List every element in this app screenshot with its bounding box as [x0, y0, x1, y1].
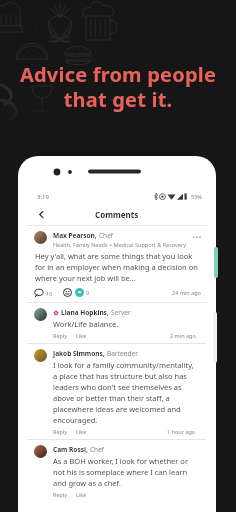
- staticText: Health, Family Needs > Medical Support &…: [53, 241, 187, 248]
- button[interactable]: Cam Rossi,: [27, 440, 206, 502]
- staticText: Server: [111, 308, 131, 317]
- staticText: 55%: [191, 193, 202, 200]
- button[interactable]: Jakob Simmons,: [27, 344, 206, 439]
- staticText: As a BOH worker, I look for whether or n…: [53, 456, 196, 488]
- staticText: Comments: [95, 209, 139, 220]
- staticText: Work/Life balance.: [53, 319, 119, 329]
- staticText: Chef: [99, 231, 114, 240]
- staticText: Bartender: [107, 349, 138, 358]
- staticText: 2 min ago: [170, 332, 196, 339]
- staticText: Max Pearson,: [53, 231, 97, 240]
- staticText: 3:19: [37, 193, 49, 201]
- staticText: Jakob Simmons,: [53, 349, 105, 358]
- staticText: 24 min ago: [172, 289, 201, 296]
- button[interactable]: 9: [75, 288, 90, 297]
- button[interactable]: Reply: [53, 491, 68, 498]
- button[interactable]: 10: [33, 288, 54, 298]
- staticText: Advice from people that get it.: [0, 61, 236, 113]
- button[interactable]: Max Pearson,: [27, 226, 206, 302]
- staticText: Chef: [90, 445, 105, 454]
- staticText: Cam Rossi,: [53, 445, 88, 454]
- staticText: 9: [86, 289, 90, 296]
- button[interactable]: Like: [76, 428, 87, 435]
- button[interactable]: More options: [190, 231, 204, 243]
- button[interactable]: Reply: [53, 428, 68, 435]
- button[interactable]: Like: [76, 491, 87, 498]
- button[interactable]: Liana Hopkins,: [27, 303, 206, 343]
- staticText: 1 hour ago: [167, 428, 196, 435]
- staticText: I look for a family community/mentality,…: [53, 360, 196, 425]
- button[interactable]: Back: [31, 203, 51, 225]
- button[interactable]: Add reaction: [63, 288, 72, 297]
- staticText: Hey y'all, what are some things that you…: [35, 251, 198, 283]
- staticText: 10: [46, 290, 53, 297]
- button[interactable]: Like: [76, 332, 87, 339]
- staticText: Liana Hopkins,: [61, 308, 109, 317]
- button[interactable]: Reply: [53, 332, 68, 339]
